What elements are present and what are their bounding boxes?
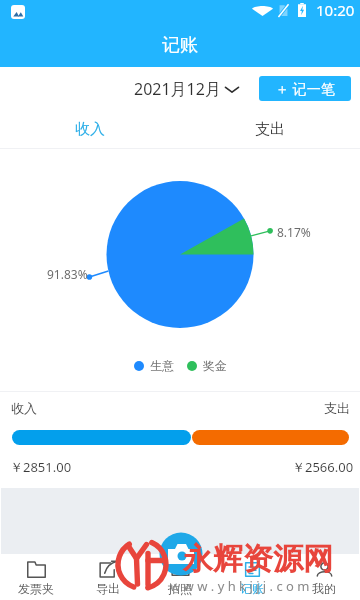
button[interactable]: 发票夹 — [0, 554, 72, 600]
staticText: 支出 — [324, 400, 350, 416]
staticText: 永辉资源网 — [183, 540, 333, 578]
staticText: 发票夹 — [18, 581, 54, 596]
button[interactable]: 导出 — [72, 554, 144, 600]
staticText: 记账 — [162, 34, 198, 57]
staticText: 91.83% — [47, 266, 88, 282]
staticText: w w w . y h k j j j . c o m — [170, 577, 310, 595]
staticText: 2021月12月 — [134, 78, 221, 100]
staticText: 拍照 — [168, 581, 192, 596]
button[interactable]: 我的 — [288, 554, 360, 600]
staticText: 我的 — [312, 581, 336, 596]
button[interactable]: 2021月12月 — [130, 74, 245, 104]
staticText: ￥2851.00 — [10, 458, 72, 476]
button[interactable]: 支出 — [180, 110, 360, 148]
staticText: ＋ 记一笔 — [275, 79, 335, 98]
button[interactable]: ＋ 记一笔 — [259, 76, 351, 101]
staticText: ￥2566.00 — [292, 458, 354, 476]
staticText: 8.17% — [277, 224, 311, 240]
staticText: 奖金 — [203, 358, 227, 373]
staticText: 生意 — [150, 358, 174, 373]
staticText: 记账 — [240, 581, 264, 596]
staticText: 10:20 — [316, 0, 355, 20]
button[interactable]: 收入 — [0, 110, 180, 148]
staticText: 导出 — [96, 581, 120, 596]
button[interactable]: 记账 — [216, 554, 288, 600]
staticText: 收入 — [11, 400, 37, 416]
button[interactable]: 拍照 — [144, 554, 216, 600]
staticText: 收入 — [75, 120, 105, 139]
staticText: 支出 — [255, 120, 285, 139]
